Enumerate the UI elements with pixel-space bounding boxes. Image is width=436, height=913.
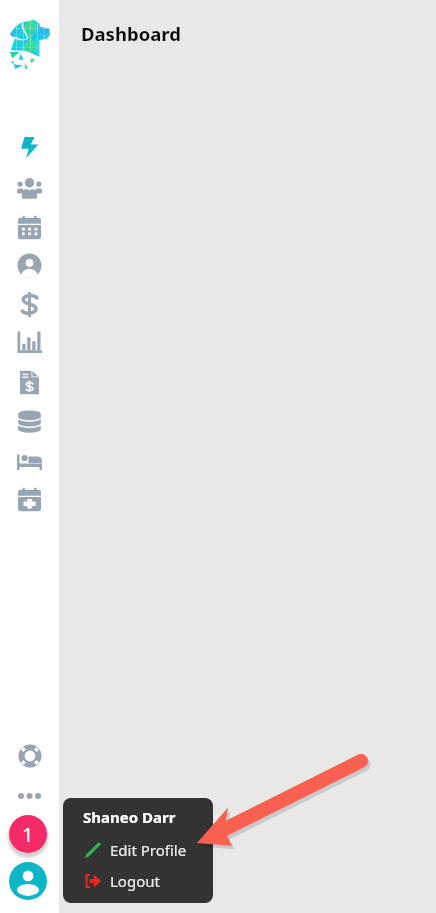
button[interactable]: Appointments — [9, 480, 50, 518]
button[interactable]: Notifications — [9, 815, 47, 853]
button[interactable]: Logout — [63, 865, 213, 896]
button[interactable]: Profile — [9, 246, 50, 284]
button[interactable]: Edit Profile — [63, 834, 213, 865]
button[interactable]: Invoices — [9, 363, 50, 401]
button[interactable]: Account — [9, 862, 47, 900]
button[interactable]: Help — [9, 737, 50, 775]
staticText: Shaneo Darr — [83, 807, 176, 827]
button[interactable]: Beds — [9, 441, 50, 479]
button[interactable]: Records — [9, 402, 50, 440]
button[interactable]: Reports — [9, 323, 50, 361]
staticText: Dashboard — [81, 21, 181, 46]
button[interactable]: Payments — [9, 285, 50, 323]
button[interactable]: Dashboard — [9, 128, 50, 166]
button[interactable]: Calendar — [9, 208, 50, 246]
staticText: Edit Profile — [110, 840, 187, 860]
button[interactable]: Patients — [9, 169, 50, 207]
staticText: 1 — [22, 821, 34, 848]
staticText: Logout — [110, 871, 160, 891]
button[interactable]: More — [9, 777, 50, 815]
